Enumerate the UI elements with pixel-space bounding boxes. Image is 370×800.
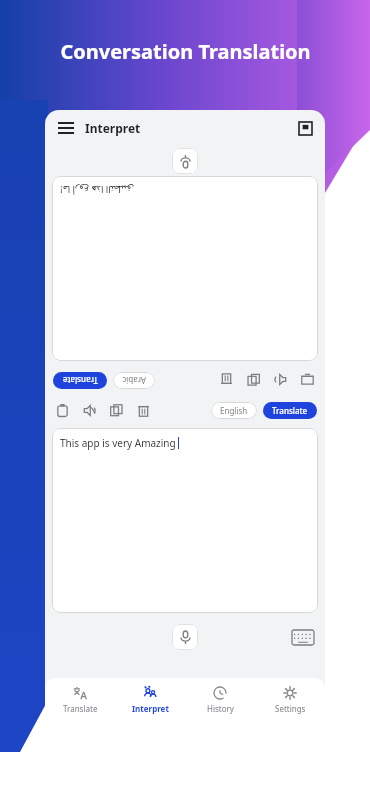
staticText: Translate xyxy=(63,703,98,714)
staticText: ما أروع هذا التطبيق! xyxy=(60,184,134,196)
staticText: This app is very Amazing xyxy=(60,436,176,450)
staticText: Conversation Translation xyxy=(60,38,311,65)
staticText: Translate xyxy=(62,375,98,386)
button[interactable]: Layout xyxy=(295,118,315,138)
button[interactable]: English xyxy=(211,402,257,419)
button[interactable]: Menu xyxy=(55,117,77,139)
button[interactable]: History xyxy=(185,678,255,722)
button[interactable]: Translate xyxy=(263,402,317,419)
button[interactable]: Delete xyxy=(134,401,152,419)
button[interactable]: Arabic xyxy=(113,372,155,389)
staticText: English xyxy=(220,405,248,416)
button[interactable]: Translate xyxy=(53,372,107,389)
button[interactable]: This app is very Amazing xyxy=(52,428,318,613)
button[interactable]: Copy xyxy=(107,401,125,419)
button[interactable]: Settings xyxy=(255,678,325,722)
staticText: Arabic xyxy=(122,375,146,386)
staticText: History xyxy=(207,703,234,714)
button[interactable]: Interpret xyxy=(115,678,185,722)
staticText: Interpret xyxy=(85,120,141,136)
button[interactable]: ما أروع هذا التطبيق! xyxy=(52,176,318,361)
button[interactable]: Mute xyxy=(80,401,98,419)
button[interactable]: Speaker xyxy=(272,371,290,389)
button[interactable]: Microphone xyxy=(172,624,198,650)
button[interactable]: Screen xyxy=(299,371,317,389)
staticText: Interpret xyxy=(132,703,169,714)
button[interactable]: Delete xyxy=(218,371,236,389)
button[interactable]: Copy xyxy=(245,371,263,389)
button[interactable]: Paste xyxy=(53,401,71,419)
button[interactable]: Translate xyxy=(45,678,115,722)
staticText: Settings xyxy=(275,703,306,714)
button[interactable]: Microphone xyxy=(172,148,198,174)
button[interactable]: Keyboard xyxy=(291,629,315,646)
staticText: Translate xyxy=(272,405,308,416)
